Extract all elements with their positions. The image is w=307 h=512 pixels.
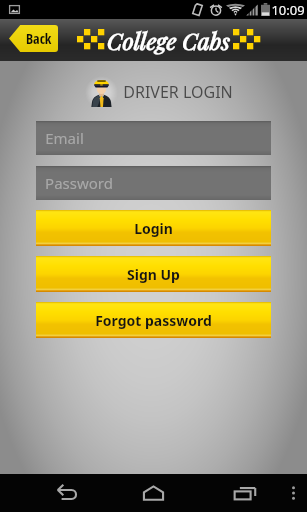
staticText: DRIVER LOGIN xyxy=(123,81,233,103)
button[interactable]: Password xyxy=(36,166,271,200)
button[interactable]: Sign Up xyxy=(36,256,271,292)
staticText: College Cabs xyxy=(107,25,231,56)
button[interactable]: Home xyxy=(125,474,182,512)
staticText: Forgot password xyxy=(95,311,212,330)
button[interactable]: Back xyxy=(9,25,58,52)
button[interactable]: More options xyxy=(282,474,304,512)
staticText: 10:09 xyxy=(271,1,305,19)
staticText: Login xyxy=(134,219,173,238)
button[interactable]: Back xyxy=(36,474,93,512)
staticText: Email xyxy=(45,128,84,148)
button[interactable]: Recent apps xyxy=(216,474,273,512)
staticText: Back xyxy=(26,29,52,48)
button[interactable]: Email xyxy=(36,121,271,155)
button[interactable]: Forgot password xyxy=(36,302,271,338)
staticText: Sign Up xyxy=(127,265,180,284)
staticText: Password xyxy=(45,173,113,193)
button[interactable]: Login xyxy=(36,210,271,246)
